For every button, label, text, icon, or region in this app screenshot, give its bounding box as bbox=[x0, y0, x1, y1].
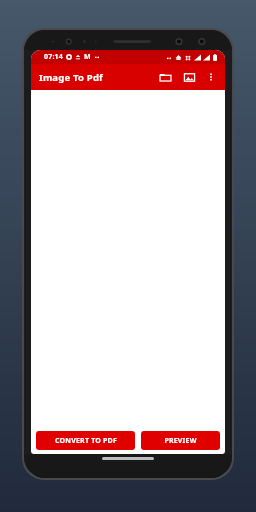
button[interactable]: Open folder bbox=[153, 65, 177, 89]
staticText: M bbox=[84, 52, 91, 62]
staticText: 07:14 bbox=[44, 52, 63, 62]
button[interactable]: More options bbox=[201, 67, 221, 87]
button[interactable]: PREVIEW bbox=[141, 431, 220, 450]
staticText: PREVIEW bbox=[164, 436, 197, 446]
button[interactable]: CONVERT TO PDF bbox=[36, 431, 135, 450]
staticText: CONVERT TO PDF bbox=[55, 436, 117, 446]
staticText: Image To Pdf bbox=[39, 71, 103, 84]
button[interactable]: Pick image bbox=[177, 65, 201, 89]
